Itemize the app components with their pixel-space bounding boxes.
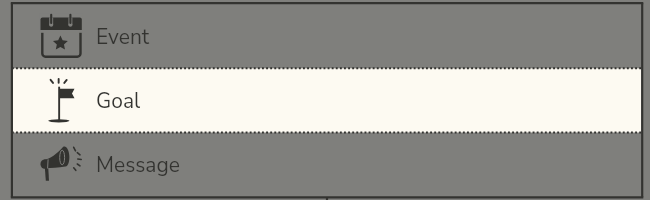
staticText: Goal xyxy=(96,87,141,116)
button[interactable]: Goal xyxy=(0,68,650,132)
staticText: Message xyxy=(96,151,180,180)
staticText: Event xyxy=(96,23,150,52)
button[interactable]: Event xyxy=(0,4,650,68)
button[interactable]: Message xyxy=(0,132,650,196)
